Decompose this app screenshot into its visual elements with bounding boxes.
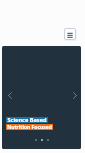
button[interactable]: Science Based (6, 117, 48, 123)
staticText: Nutrition Focused (7, 124, 52, 130)
button[interactable]: Nutrition Focused (6, 124, 53, 130)
button[interactable]: Previous slide (3, 89, 16, 102)
button[interactable]: Menu (64, 28, 77, 41)
staticText: Science Based (7, 117, 47, 123)
button[interactable]: Next slide (68, 89, 81, 102)
